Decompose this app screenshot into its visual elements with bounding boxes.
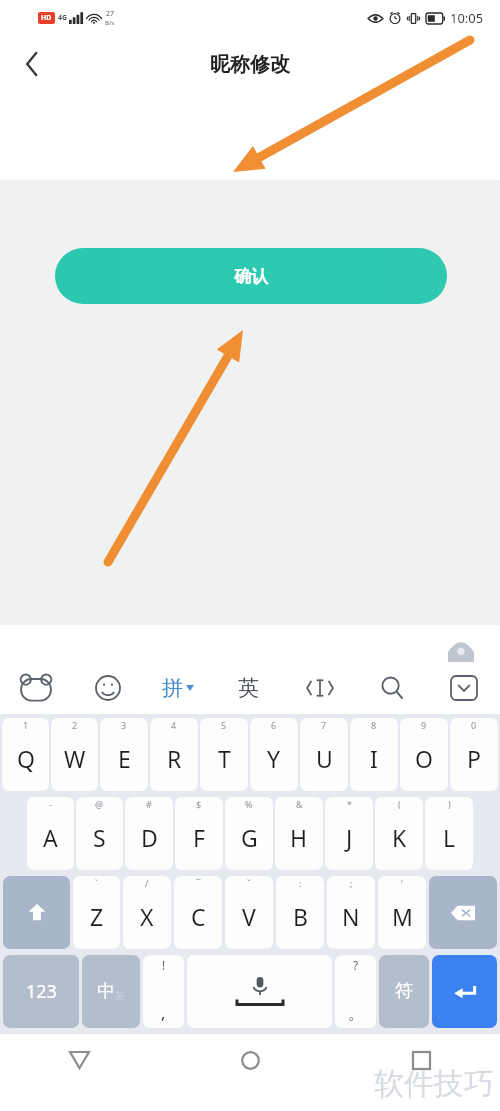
button[interactable]: Back	[56, 1037, 102, 1083]
button[interactable]: Recents	[398, 1037, 444, 1083]
staticText: I	[370, 743, 378, 774]
staticText: 8	[371, 719, 377, 731]
button[interactable]: *	[325, 797, 373, 870]
staticText: 7	[321, 719, 327, 731]
staticText: 昵称修改	[210, 52, 290, 77]
button[interactable]: 7	[300, 718, 348, 791]
staticText: G	[241, 822, 258, 853]
staticText: 9	[421, 719, 427, 731]
staticText: S	[93, 822, 106, 853]
button[interactable]: 1	[2, 718, 49, 791]
staticText: 4	[171, 719, 177, 731]
button[interactable]: (	[375, 797, 423, 870]
button[interactable]: %	[225, 797, 273, 870]
staticText: 0	[471, 719, 477, 731]
staticText: M	[392, 901, 413, 932]
button[interactable]: @	[76, 797, 123, 870]
button[interactable]: $	[175, 797, 223, 870]
staticText: D	[141, 822, 158, 853]
staticText: 27	[106, 9, 115, 19]
staticText: R	[167, 743, 182, 774]
button[interactable]: 9	[400, 718, 448, 791]
staticText: 123	[26, 979, 57, 1004]
button[interactable]: 0	[450, 718, 498, 791]
button[interactable]: 确认	[55, 248, 447, 304]
staticText: 3	[121, 719, 127, 731]
staticText: 4G	[58, 13, 68, 23]
staticText: 2	[72, 719, 78, 731]
staticText: $	[196, 798, 202, 810]
staticText: N	[342, 901, 360, 932]
staticText: P	[467, 743, 481, 774]
staticText: /	[145, 877, 149, 889]
button[interactable]: Space, voice input	[187, 955, 332, 1028]
staticText: 10:05	[450, 9, 484, 27]
staticText: ¯	[196, 877, 201, 889]
staticText: H	[290, 822, 308, 853]
staticText: HD	[41, 13, 52, 23]
button[interactable]: ¯	[174, 876, 222, 949]
button[interactable]: ‘	[378, 876, 426, 949]
button[interactable]: 英	[226, 666, 270, 710]
button[interactable]: Shift	[3, 876, 70, 949]
button[interactable]: &	[275, 797, 323, 870]
button[interactable]: 3	[100, 718, 148, 791]
staticText: !	[162, 957, 166, 973]
staticText: :	[299, 877, 302, 889]
staticText: 1	[23, 719, 29, 731]
staticText: Q	[17, 743, 35, 774]
staticText: ˋ	[95, 877, 98, 889]
button[interactable]: 4	[150, 718, 198, 791]
button[interactable]: Emoji	[86, 666, 130, 710]
staticText: 英	[115, 989, 125, 1002]
button[interactable]: Hide keyboard	[442, 666, 486, 710]
button[interactable]: 中	[82, 955, 140, 1028]
button[interactable]: 2	[51, 718, 98, 791]
staticText: B/s	[105, 19, 115, 27]
button[interactable]: Backspace	[429, 876, 497, 949]
button[interactable]: ;	[327, 876, 375, 949]
staticText: 符	[395, 980, 413, 1003]
button[interactable]: 拼	[158, 669, 198, 707]
button[interactable]: ?	[335, 955, 376, 1028]
button[interactable]: -	[27, 797, 74, 870]
button[interactable]: ˋ	[73, 876, 120, 949]
staticText: ˇ	[247, 877, 251, 889]
staticText: ;	[350, 877, 353, 889]
staticText: K	[392, 822, 407, 853]
button[interactable]: 6	[250, 718, 298, 791]
staticText: -	[49, 798, 52, 810]
button[interactable]: Search	[370, 666, 414, 710]
staticText: E	[118, 743, 131, 774]
button[interactable]: !	[143, 955, 184, 1028]
button[interactable]: #	[125, 797, 173, 870]
staticText: ,	[161, 1002, 166, 1024]
staticText: A	[43, 822, 58, 853]
staticText: F	[193, 822, 205, 853]
staticText: W	[64, 743, 86, 774]
button[interactable]: Back	[10, 42, 54, 86]
staticText: #	[146, 798, 152, 810]
staticText: (	[398, 798, 401, 810]
button[interactable]: )	[425, 797, 473, 870]
button[interactable]: 8	[350, 718, 398, 791]
staticText: 。	[348, 1004, 364, 1024]
button[interactable]: Home	[227, 1037, 273, 1083]
staticText: @	[95, 798, 104, 810]
button[interactable]: Move cursor	[298, 666, 342, 710]
button[interactable]: Baidu input	[14, 666, 58, 710]
button[interactable]: :	[276, 876, 324, 949]
button[interactable]: 符	[379, 955, 429, 1028]
button[interactable]: Enter	[432, 955, 497, 1028]
staticText: T	[218, 743, 231, 774]
staticText: %	[245, 798, 253, 810]
staticText: 软件技巧	[374, 1065, 494, 1103]
button[interactable]: ˇ	[225, 876, 273, 949]
staticText: 英	[238, 675, 259, 701]
button[interactable]: /	[123, 876, 171, 949]
staticText: J	[346, 822, 353, 853]
button[interactable]: 123	[3, 955, 79, 1028]
staticText: 5	[221, 719, 227, 731]
staticText: C	[191, 901, 206, 932]
button[interactable]: 5	[200, 718, 248, 791]
